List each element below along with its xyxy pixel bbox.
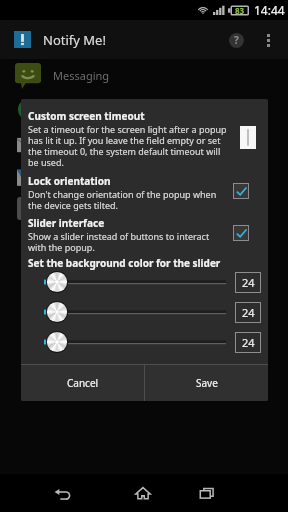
staticText: Set a timeout for the screen light after… <box>28 123 228 168</box>
staticText: Custom screen timeout <box>28 109 145 123</box>
staticText: 24 <box>242 275 255 290</box>
staticText: Phone <box>53 200 87 215</box>
button[interactable]: Home <box>120 474 166 512</box>
staticText: Save <box>196 376 218 390</box>
button[interactable]: Value <box>236 303 260 322</box>
button[interactable]: Value <box>236 273 260 292</box>
staticText: Lock orientation <box>28 174 111 188</box>
staticText: Set the background color for the slider <box>28 256 221 270</box>
button[interactable]: Value <box>236 333 260 352</box>
button[interactable]: Color slider <box>44 331 226 353</box>
button[interactable]: Back <box>38 474 84 512</box>
button[interactable]: Messaging <box>0 59 288 92</box>
staticText: Hangouts <box>53 167 104 182</box>
staticText: Cancel <box>67 376 99 390</box>
staticText: 24 <box>242 335 255 350</box>
staticText: Notify Me! <box>43 31 106 49</box>
button[interactable]: Recents <box>184 474 230 512</box>
button[interactable]: Hangouts <box>0 158 288 191</box>
button[interactable]: WhatsApp <box>0 92 288 125</box>
button[interactable]: Save <box>145 365 268 401</box>
staticText: Don't change orientation of the popup wh… <box>28 188 228 211</box>
staticText: Gmail <box>53 134 84 149</box>
staticText: Messaging <box>53 68 110 83</box>
staticText: Show a slider instead of buttons to inte… <box>28 230 228 253</box>
staticText: WhatsApp <box>53 101 106 116</box>
button[interactable]: Timeout value <box>240 126 256 149</box>
button[interactable]: Cancel <box>21 365 144 401</box>
staticText: Slider interface <box>28 216 105 230</box>
button[interactable]: Help <box>219 23 253 57</box>
button[interactable]: Toggle Slider interface <box>234 226 248 240</box>
button[interactable]: Toggle Lock orientation <box>234 184 248 198</box>
staticText: 83 <box>235 5 245 16</box>
button[interactable]: Color slider <box>44 301 226 323</box>
staticText: ? <box>234 33 239 47</box>
button[interactable]: Color slider <box>44 271 226 293</box>
staticText: 14:44 <box>254 2 285 18</box>
button[interactable]: Gmail <box>0 125 288 158</box>
button[interactable]: More options <box>253 25 283 55</box>
staticText: 24 <box>242 305 255 320</box>
button[interactable]: Phone <box>0 191 288 224</box>
